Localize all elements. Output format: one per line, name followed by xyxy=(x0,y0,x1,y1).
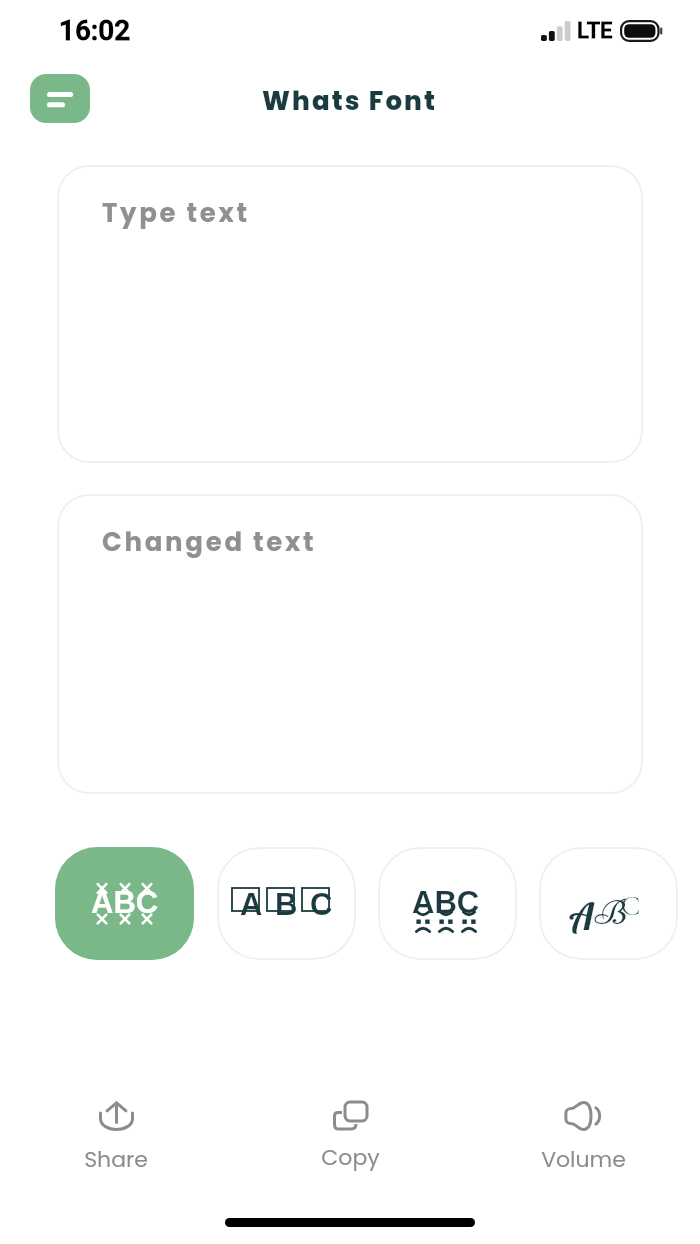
staticText: A xyxy=(240,887,263,922)
staticText: Share xyxy=(84,1144,148,1175)
staticText: C xyxy=(310,887,333,922)
button[interactable]: Share xyxy=(41,1101,191,1175)
staticText: 16:02 xyxy=(59,14,131,47)
staticText: Whats Font xyxy=(262,83,438,119)
staticText: Copy xyxy=(321,1142,380,1173)
staticText: LTE xyxy=(577,18,613,44)
button[interactable]: Open menu xyxy=(30,74,90,123)
staticText: ABC xyxy=(91,885,159,920)
staticText: Changed text xyxy=(102,524,317,560)
button[interactable]: Font style 4 xyxy=(539,847,678,960)
staticText: B xyxy=(595,892,628,933)
button[interactable]: Copy xyxy=(275,1101,425,1173)
button[interactable]: Volume xyxy=(508,1101,658,1175)
staticText: A xyxy=(569,893,594,939)
button[interactable]: Type text xyxy=(57,165,643,463)
button[interactable]: Changed text xyxy=(57,494,643,794)
staticText: Volume xyxy=(541,1144,626,1175)
staticText: B xyxy=(275,887,298,922)
button[interactable]: Font style 3 xyxy=(378,847,517,960)
button[interactable]: Font style 2 xyxy=(217,847,356,960)
staticText: Type text xyxy=(102,195,250,231)
staticText: C xyxy=(621,889,641,923)
staticText: ABC xyxy=(412,885,480,920)
button[interactable]: Font style 1 xyxy=(55,847,194,960)
